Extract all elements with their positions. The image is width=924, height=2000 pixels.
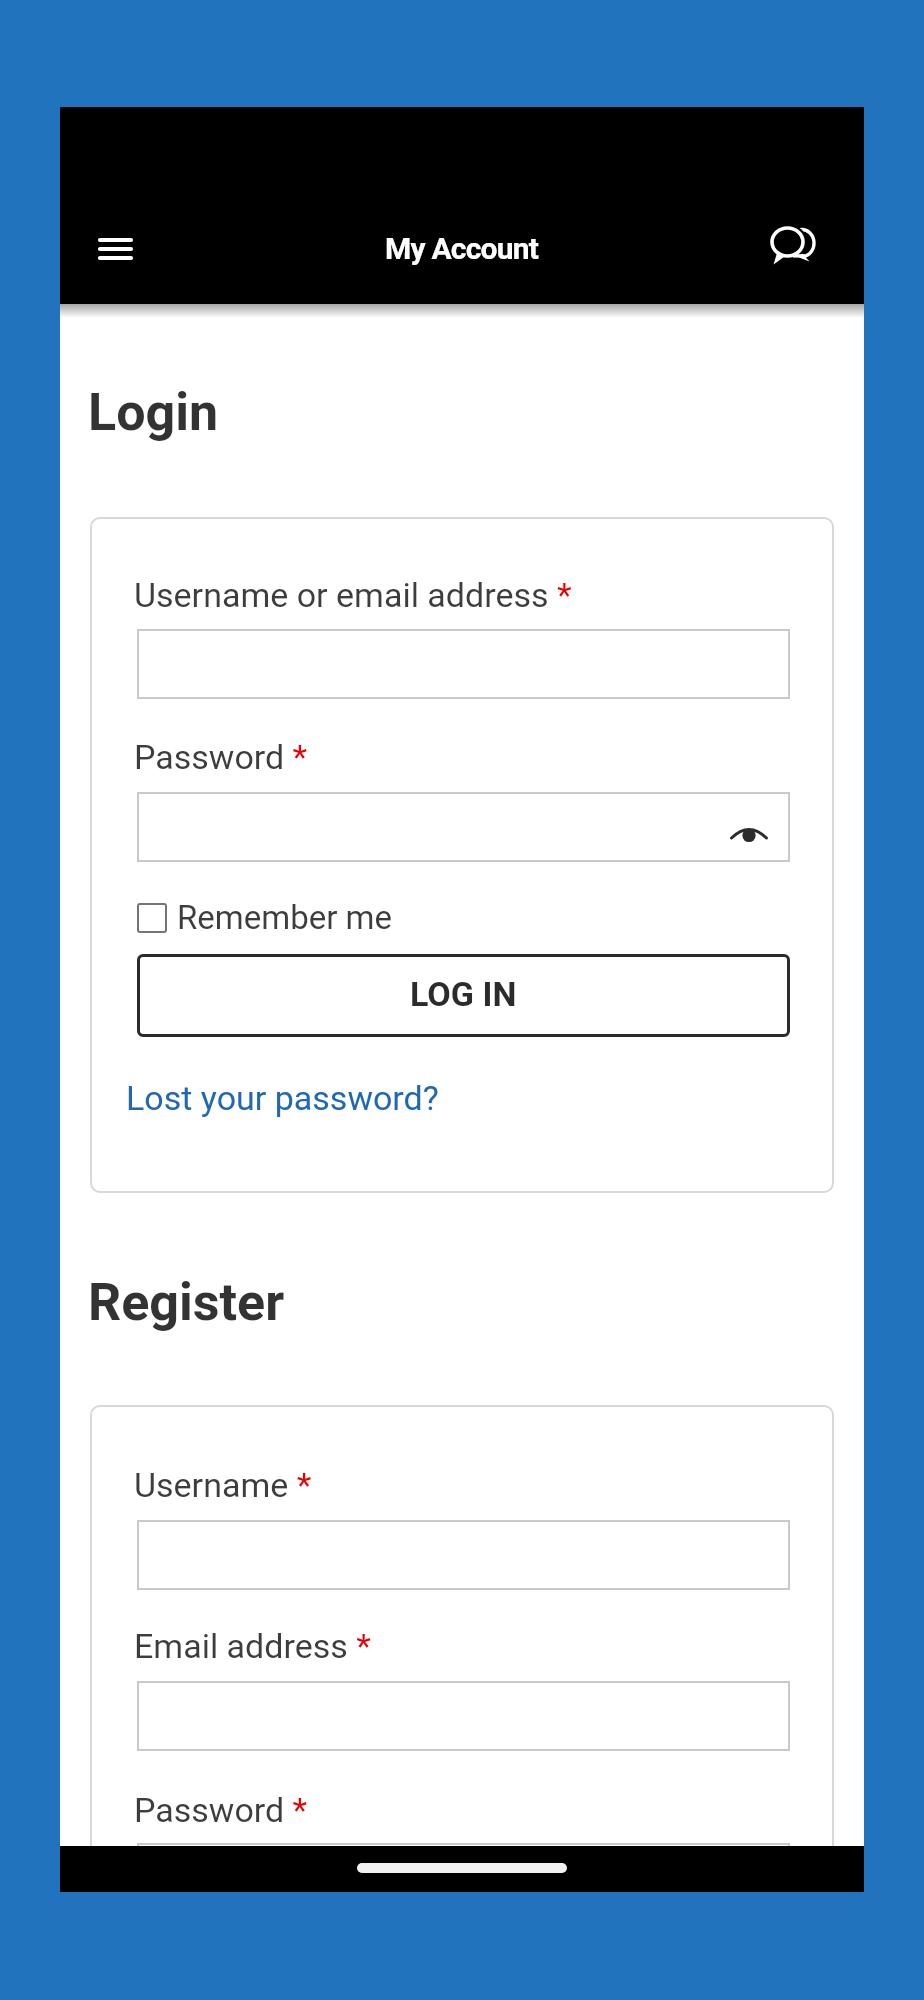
staticText: My Account <box>385 231 539 266</box>
staticText: Email address * <box>134 1626 371 1666</box>
button[interactable] <box>137 1520 790 1590</box>
staticText: Username or email address * <box>134 575 572 615</box>
button[interactable]: Lost your password? <box>126 1078 439 1118</box>
button[interactable] <box>768 223 818 273</box>
staticText: Password * <box>134 737 308 777</box>
staticText: Login <box>88 382 219 443</box>
button[interactable] <box>137 1681 790 1751</box>
staticText: Remember me <box>177 898 393 937</box>
staticText: Register <box>88 1272 285 1333</box>
button[interactable]: LOG IN <box>137 954 790 1037</box>
staticText: Username * <box>134 1465 312 1505</box>
button[interactable] <box>137 629 790 699</box>
button[interactable] <box>137 1843 790 1892</box>
staticText: Password * <box>134 1790 308 1830</box>
button[interactable] <box>137 792 790 862</box>
button[interactable]: Remember me <box>137 898 393 937</box>
button[interactable] <box>98 237 133 261</box>
staticText: LOG IN <box>410 974 517 1014</box>
